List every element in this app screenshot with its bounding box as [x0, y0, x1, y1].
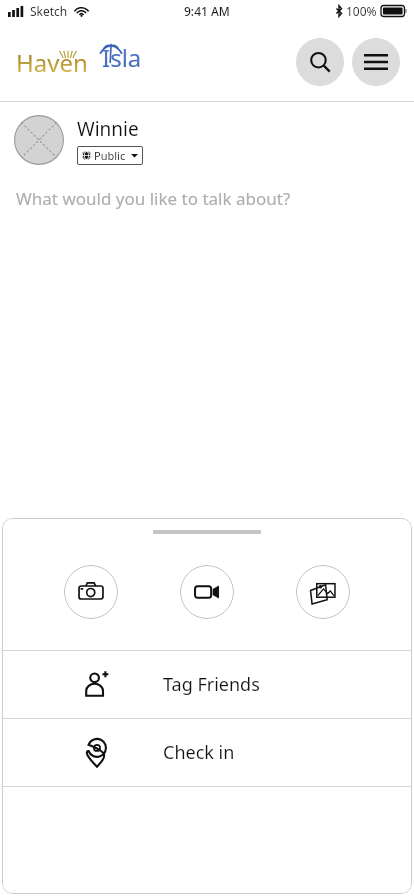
staticText: Public	[94, 148, 126, 163]
staticText: Check in	[163, 740, 235, 765]
button[interactable]: Take photo	[64, 565, 118, 619]
staticText: 9:41 AM	[184, 3, 230, 19]
staticText: Island	[102, 41, 152, 79]
button[interactable]: Check in	[2, 719, 412, 786]
button[interactable]: Search	[296, 38, 344, 86]
button[interactable]: Record video	[180, 565, 234, 619]
button[interactable]: Public	[77, 146, 143, 165]
staticText: Sketch	[30, 3, 68, 19]
button[interactable]: Menu	[352, 38, 400, 86]
staticText: 100%	[346, 3, 377, 19]
staticText: Winnie	[77, 116, 139, 142]
staticText: Tag Friends	[163, 672, 260, 697]
staticText: What would you like to talk about?	[16, 187, 291, 210]
button[interactable]: Tag Friends	[2, 651, 412, 718]
button[interactable]: Choose from gallery	[296, 565, 350, 619]
staticText: Haven	[16, 46, 88, 79]
